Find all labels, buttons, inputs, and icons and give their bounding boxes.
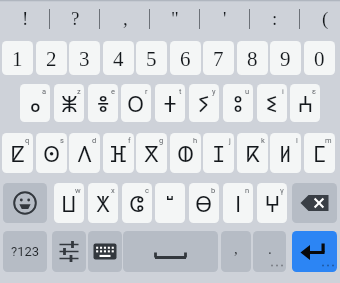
staticText: ⵜ: [164, 88, 177, 118]
staticText: ⵙ: [43, 138, 61, 168]
staticText: i: [282, 87, 284, 96]
button[interactable]: ⵢ: [189, 84, 219, 122]
button[interactable]: ⵔ: [121, 84, 151, 122]
button[interactable]: ?: [50, 0, 100, 39]
staticText: ⴻ: [97, 88, 110, 118]
button[interactable]: ⴳ: [136, 133, 167, 173]
button[interactable]: 6: [170, 41, 201, 75]
staticText: 4: [113, 47, 124, 70]
staticText: ?: [71, 8, 80, 29]
button[interactable]: Space: [123, 231, 218, 272]
button[interactable]: ⵀ: [170, 133, 201, 173]
button[interactable]: ⵉ: [257, 84, 287, 122]
button[interactable]: 0: [304, 41, 335, 75]
button[interactable]: Settings: [52, 231, 86, 272]
button[interactable]: (: [300, 0, 340, 39]
staticText: ⴷ: [77, 138, 93, 168]
staticText: ⵅ: [96, 188, 111, 218]
button[interactable]: ": [150, 0, 200, 39]
button[interactable]: ⴻ: [88, 84, 118, 122]
staticText: ⴼ: [110, 138, 127, 168]
staticText: 5: [146, 47, 157, 70]
staticText: .: [268, 241, 272, 258]
button[interactable]: ⵥ: [54, 84, 84, 122]
staticText: n: [245, 186, 250, 195]
button[interactable]: ⵖ: [257, 183, 287, 223]
staticText: l: [296, 136, 298, 145]
staticText: ⵖ: [265, 188, 280, 218]
button[interactable]: ⵎ: [304, 133, 335, 173]
button[interactable]: 7: [203, 41, 234, 75]
staticText: 2: [46, 47, 57, 70]
staticText: ⵄ: [298, 88, 313, 118]
staticText: a: [42, 87, 47, 96]
button[interactable]: ⵇ: [2, 133, 33, 173]
staticText: 6: [180, 47, 191, 70]
staticText: 7: [213, 47, 224, 70]
staticText: ⵏ: [235, 188, 242, 218]
button[interactable]: ,: [221, 231, 251, 272]
button[interactable]: ⵅ: [88, 183, 118, 223]
button[interactable]: ⴼ: [103, 133, 134, 173]
staticText: d: [92, 136, 97, 145]
staticText: ⵍ: [279, 138, 292, 168]
staticText: ⵥ: [61, 88, 78, 118]
staticText: c: [145, 186, 149, 195]
button[interactable]: ⴽ: [237, 133, 268, 173]
staticText: s: [60, 136, 64, 145]
button[interactable]: ⵓ: [223, 84, 253, 122]
button[interactable]: ⵯ: [155, 183, 185, 223]
staticText: γ: [280, 186, 284, 195]
button[interactable]: ⵏ: [223, 183, 253, 223]
staticText: ': [223, 8, 227, 29]
staticText: ⵢ: [198, 88, 210, 118]
staticText: ,: [123, 8, 128, 29]
staticText: ⵀ: [177, 138, 195, 168]
button[interactable]: ': [200, 0, 250, 39]
button[interactable]: 5: [136, 41, 167, 75]
staticText: ,: [234, 241, 238, 258]
staticText: 9: [280, 47, 291, 70]
staticText: ⴳ: [144, 138, 159, 168]
staticText: w: [75, 186, 81, 195]
staticText: ⵛ: [129, 188, 145, 218]
button[interactable]: Switch keyboard: [88, 231, 122, 272]
staticText: y: [212, 87, 216, 96]
button[interactable]: ⴱ: [189, 183, 219, 223]
button[interactable]: 2: [36, 41, 67, 75]
button[interactable]: 3: [69, 41, 100, 75]
button[interactable]: !: [0, 0, 50, 39]
button[interactable]: Backspace: [292, 183, 337, 223]
staticText: u: [245, 87, 250, 96]
staticText: (: [322, 8, 329, 29]
button[interactable]: Emoji: [3, 183, 47, 223]
button[interactable]: 9: [270, 41, 301, 75]
button[interactable]: 8: [237, 41, 268, 75]
button[interactable]: Enter: [292, 231, 337, 272]
staticText: b: [211, 186, 216, 195]
button[interactable]: ⵄ: [290, 84, 320, 122]
button[interactable]: :: [250, 0, 300, 39]
button[interactable]: ⵡ: [54, 183, 84, 223]
button[interactable]: ⵙ: [36, 133, 67, 173]
button[interactable]: ?123: [3, 231, 47, 272]
button[interactable]: ⵜ: [155, 84, 185, 122]
button[interactable]: ⵛ: [122, 183, 152, 223]
button[interactable]: ⴷ: [69, 133, 100, 173]
staticText: 8: [247, 47, 258, 70]
button[interactable]: ⴰ: [20, 84, 50, 122]
staticText: e: [111, 87, 115, 96]
staticText: ?123: [11, 244, 40, 259]
staticText: :: [272, 8, 278, 29]
button[interactable]: 1: [2, 41, 33, 75]
button[interactable]: ⵊ: [203, 133, 234, 173]
staticText: ⴱ: [195, 188, 213, 218]
staticText: ⵯ: [166, 188, 174, 218]
staticText: ⵊ: [213, 138, 225, 168]
staticText: ⵔ: [127, 88, 145, 118]
button[interactable]: 4: [103, 41, 134, 75]
staticText: 3: [79, 47, 90, 70]
button[interactable]: .: [253, 231, 286, 272]
button[interactable]: ,: [100, 0, 150, 39]
button[interactable]: ⵍ: [270, 133, 301, 173]
